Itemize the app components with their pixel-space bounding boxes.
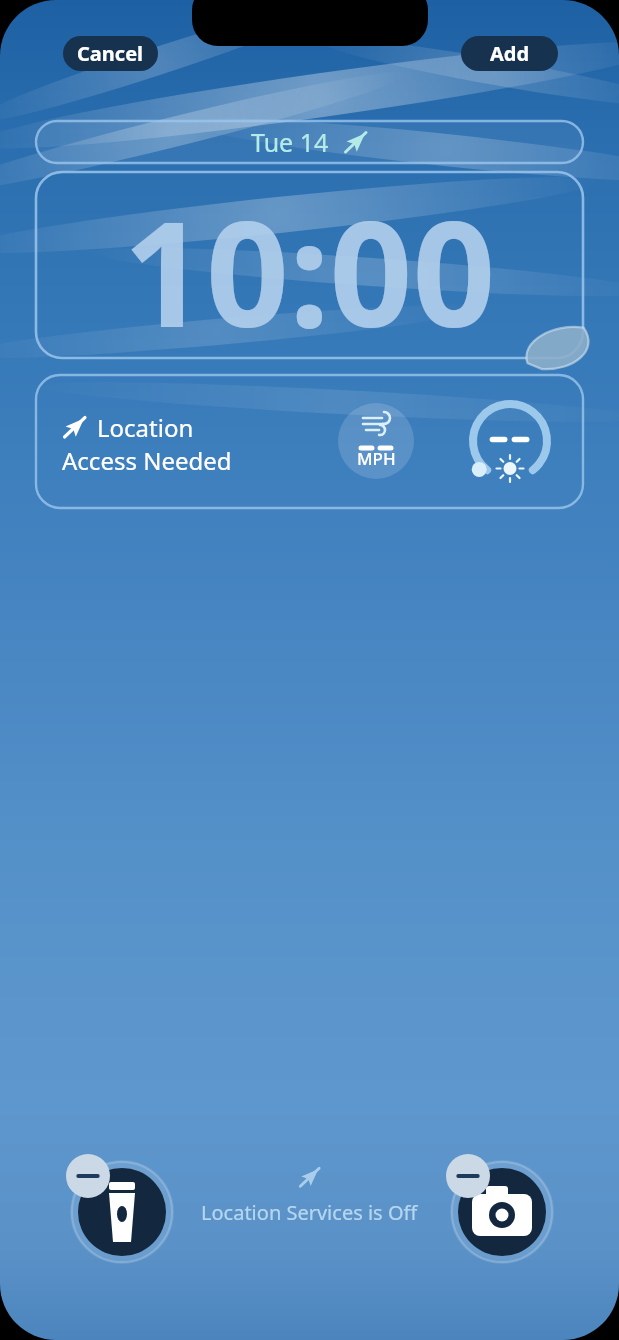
staticText: Tue 14 [251, 125, 329, 159]
staticText: Location [97, 411, 194, 444]
staticText: MPH [357, 447, 396, 470]
staticText: Cancel [77, 40, 144, 67]
staticText: Add [490, 40, 530, 67]
staticText: 10:00 [123, 172, 496, 358]
button[interactable]: 10:00 [36, 172, 583, 358]
button[interactable] [36, 121, 583, 163]
button[interactable]: Add [461, 36, 558, 71]
button[interactable]: Remove Flashlight [66, 1154, 110, 1198]
staticText: Location Services is Off [201, 1199, 418, 1226]
button[interactable]: Camera [458, 1168, 546, 1256]
button[interactable]: Location [36, 375, 583, 508]
button[interactable]: UV index [466, 399, 554, 487]
staticText: Access Needed [62, 444, 232, 477]
button[interactable]: Wind speed [338, 403, 414, 479]
button[interactable]: Remove Camera [446, 1154, 490, 1198]
button[interactable]: Cancel [63, 36, 158, 71]
button[interactable]: Flashlight [78, 1168, 166, 1256]
